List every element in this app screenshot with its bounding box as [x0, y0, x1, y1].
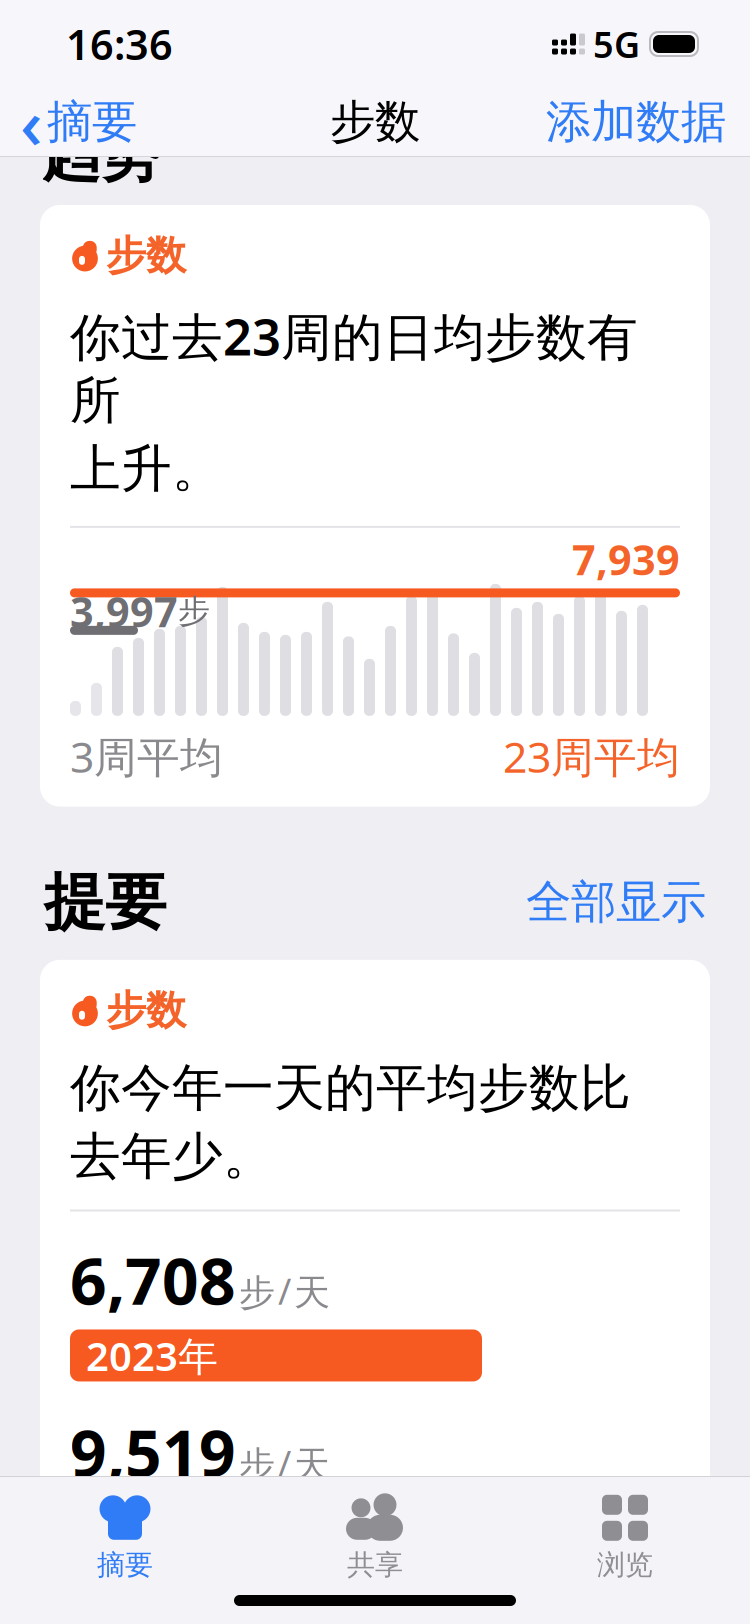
staticText: 共享 — [347, 1548, 403, 1582]
button[interactable]: 浏览 — [500, 1484, 750, 1588]
button[interactable]: ‹ — [0, 70, 137, 174]
staticText: 步 — [178, 592, 210, 631]
staticText: 7,939 — [572, 532, 680, 587]
staticText: 3周平均 — [70, 728, 223, 785]
staticText: ‹ — [20, 76, 43, 168]
staticText: 步数 — [106, 231, 186, 280]
staticText: 2022年 — [86, 1501, 218, 1554]
button[interactable]: 全部显示 — [526, 868, 706, 936]
staticText: 天 — [294, 1271, 330, 1315]
staticText: 步数 — [106, 986, 186, 1035]
staticText: 6,708 — [70, 1237, 236, 1322]
staticText: 上升。 — [70, 438, 223, 500]
staticText: 9,519 — [70, 1409, 236, 1494]
staticText: 5G — [593, 20, 640, 68]
staticText: 你过去23周的日均步数有所 — [70, 302, 638, 432]
staticText: 步 — [239, 1443, 275, 1487]
staticText: 趋势 — [42, 119, 160, 191]
staticText: 天 — [294, 1443, 330, 1487]
staticText: / — [278, 1439, 291, 1487]
staticText: 你今年一天的平均步数比 — [70, 1057, 631, 1119]
staticText: / — [278, 1267, 291, 1315]
staticText: 2023年 — [86, 1329, 218, 1382]
staticText: 摘要 — [97, 1548, 153, 1582]
staticText: 3,997 — [70, 584, 178, 639]
staticText: 摘要 — [47, 94, 137, 150]
button[interactable]: 共享 — [250, 1484, 500, 1588]
staticText: 去年少。 — [70, 1125, 274, 1187]
button[interactable]: 添加数据 — [546, 88, 750, 156]
button[interactable]: 摘要 — [0, 1484, 250, 1588]
staticText: 23周平均 — [503, 728, 680, 785]
staticText: 浏览 — [597, 1548, 653, 1582]
staticText: 添加数据 — [546, 94, 726, 150]
staticText: 全部显示 — [526, 874, 706, 930]
staticText: 步 — [239, 1271, 275, 1315]
staticText: 提要 — [44, 864, 166, 940]
staticText: 步数 — [330, 94, 420, 150]
staticText: 16:36 — [66, 17, 173, 71]
